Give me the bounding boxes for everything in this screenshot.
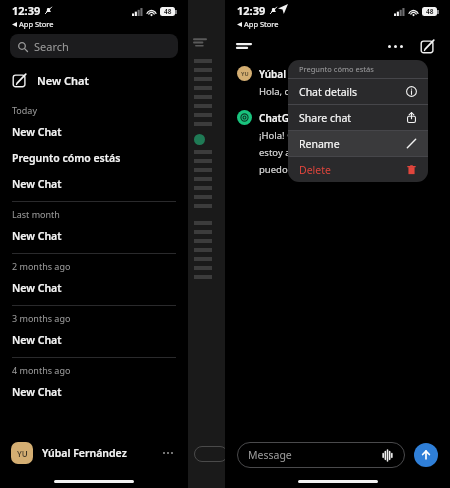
button[interactable]: New Chat xyxy=(0,119,188,145)
staticText: Pregunto cómo estás xyxy=(299,64,374,74)
button[interactable]: New Chat xyxy=(0,223,188,249)
button[interactable]: More options xyxy=(384,35,406,57)
staticText: New Chat xyxy=(12,385,62,399)
staticText: Hola, cómo estás xyxy=(259,85,336,98)
staticText: Yúbal Fernández xyxy=(42,446,127,460)
button[interactable]: New Chat xyxy=(0,327,188,353)
staticText: 48 xyxy=(164,7,172,16)
staticText: 48 xyxy=(426,7,434,16)
staticText: 2 months ago xyxy=(12,260,71,272)
button[interactable]: More options xyxy=(159,444,177,462)
button[interactable]: Share chat xyxy=(288,105,428,130)
staticText: Last month xyxy=(12,208,60,220)
button[interactable]: Search xyxy=(10,34,178,58)
button[interactable]: Message xyxy=(237,442,405,468)
staticText: Delete xyxy=(299,163,331,177)
staticText: Message xyxy=(248,448,292,462)
staticText: 4 months ago xyxy=(12,364,71,376)
button[interactable]: Chat details xyxy=(288,79,428,104)
staticText: YU xyxy=(17,448,28,459)
staticText: New Chat xyxy=(12,281,62,295)
button[interactable]: Menu xyxy=(237,35,259,57)
staticText: Chat details xyxy=(299,85,358,99)
staticText: Today xyxy=(12,104,37,116)
staticText: ChatGPT xyxy=(259,111,301,125)
staticText: App Store xyxy=(19,19,54,29)
button[interactable]: New Chat xyxy=(0,68,188,93)
button[interactable]: Pregunto cómo estás xyxy=(0,145,188,171)
button[interactable]: Rename xyxy=(288,131,428,156)
staticText: YU xyxy=(241,70,249,77)
staticText: New Chat xyxy=(12,125,62,139)
staticText: Search xyxy=(34,39,69,54)
staticText: New Chat xyxy=(12,333,62,347)
staticText: 3 months ago xyxy=(12,312,71,324)
button[interactable]: Send xyxy=(414,443,438,467)
staticText: estoy aq xyxy=(259,146,297,159)
staticText: New Chat xyxy=(12,177,62,191)
staticText: ¡Hola! Ostoy a xyxy=(259,129,321,142)
button[interactable]: Delete xyxy=(288,157,428,182)
staticText: App Store xyxy=(244,19,279,29)
staticText: puedo a xyxy=(259,163,296,176)
staticText: Yúbal xyxy=(259,67,287,81)
staticText: 12:39 xyxy=(12,3,41,18)
button[interactable]: YU xyxy=(0,436,188,470)
staticText: New Chat xyxy=(37,73,89,88)
button[interactable]: New chat xyxy=(416,35,438,57)
staticText: New Chat xyxy=(12,229,62,243)
button[interactable]: New Chat xyxy=(0,379,188,405)
staticText: Rename xyxy=(299,137,340,151)
staticText: 12:39 xyxy=(237,3,266,18)
staticText: Share chat xyxy=(299,111,352,125)
button[interactable]: New Chat xyxy=(0,275,188,301)
button[interactable]: New Chat xyxy=(0,171,188,197)
staticText: Pregunto cómo estás xyxy=(12,151,121,165)
